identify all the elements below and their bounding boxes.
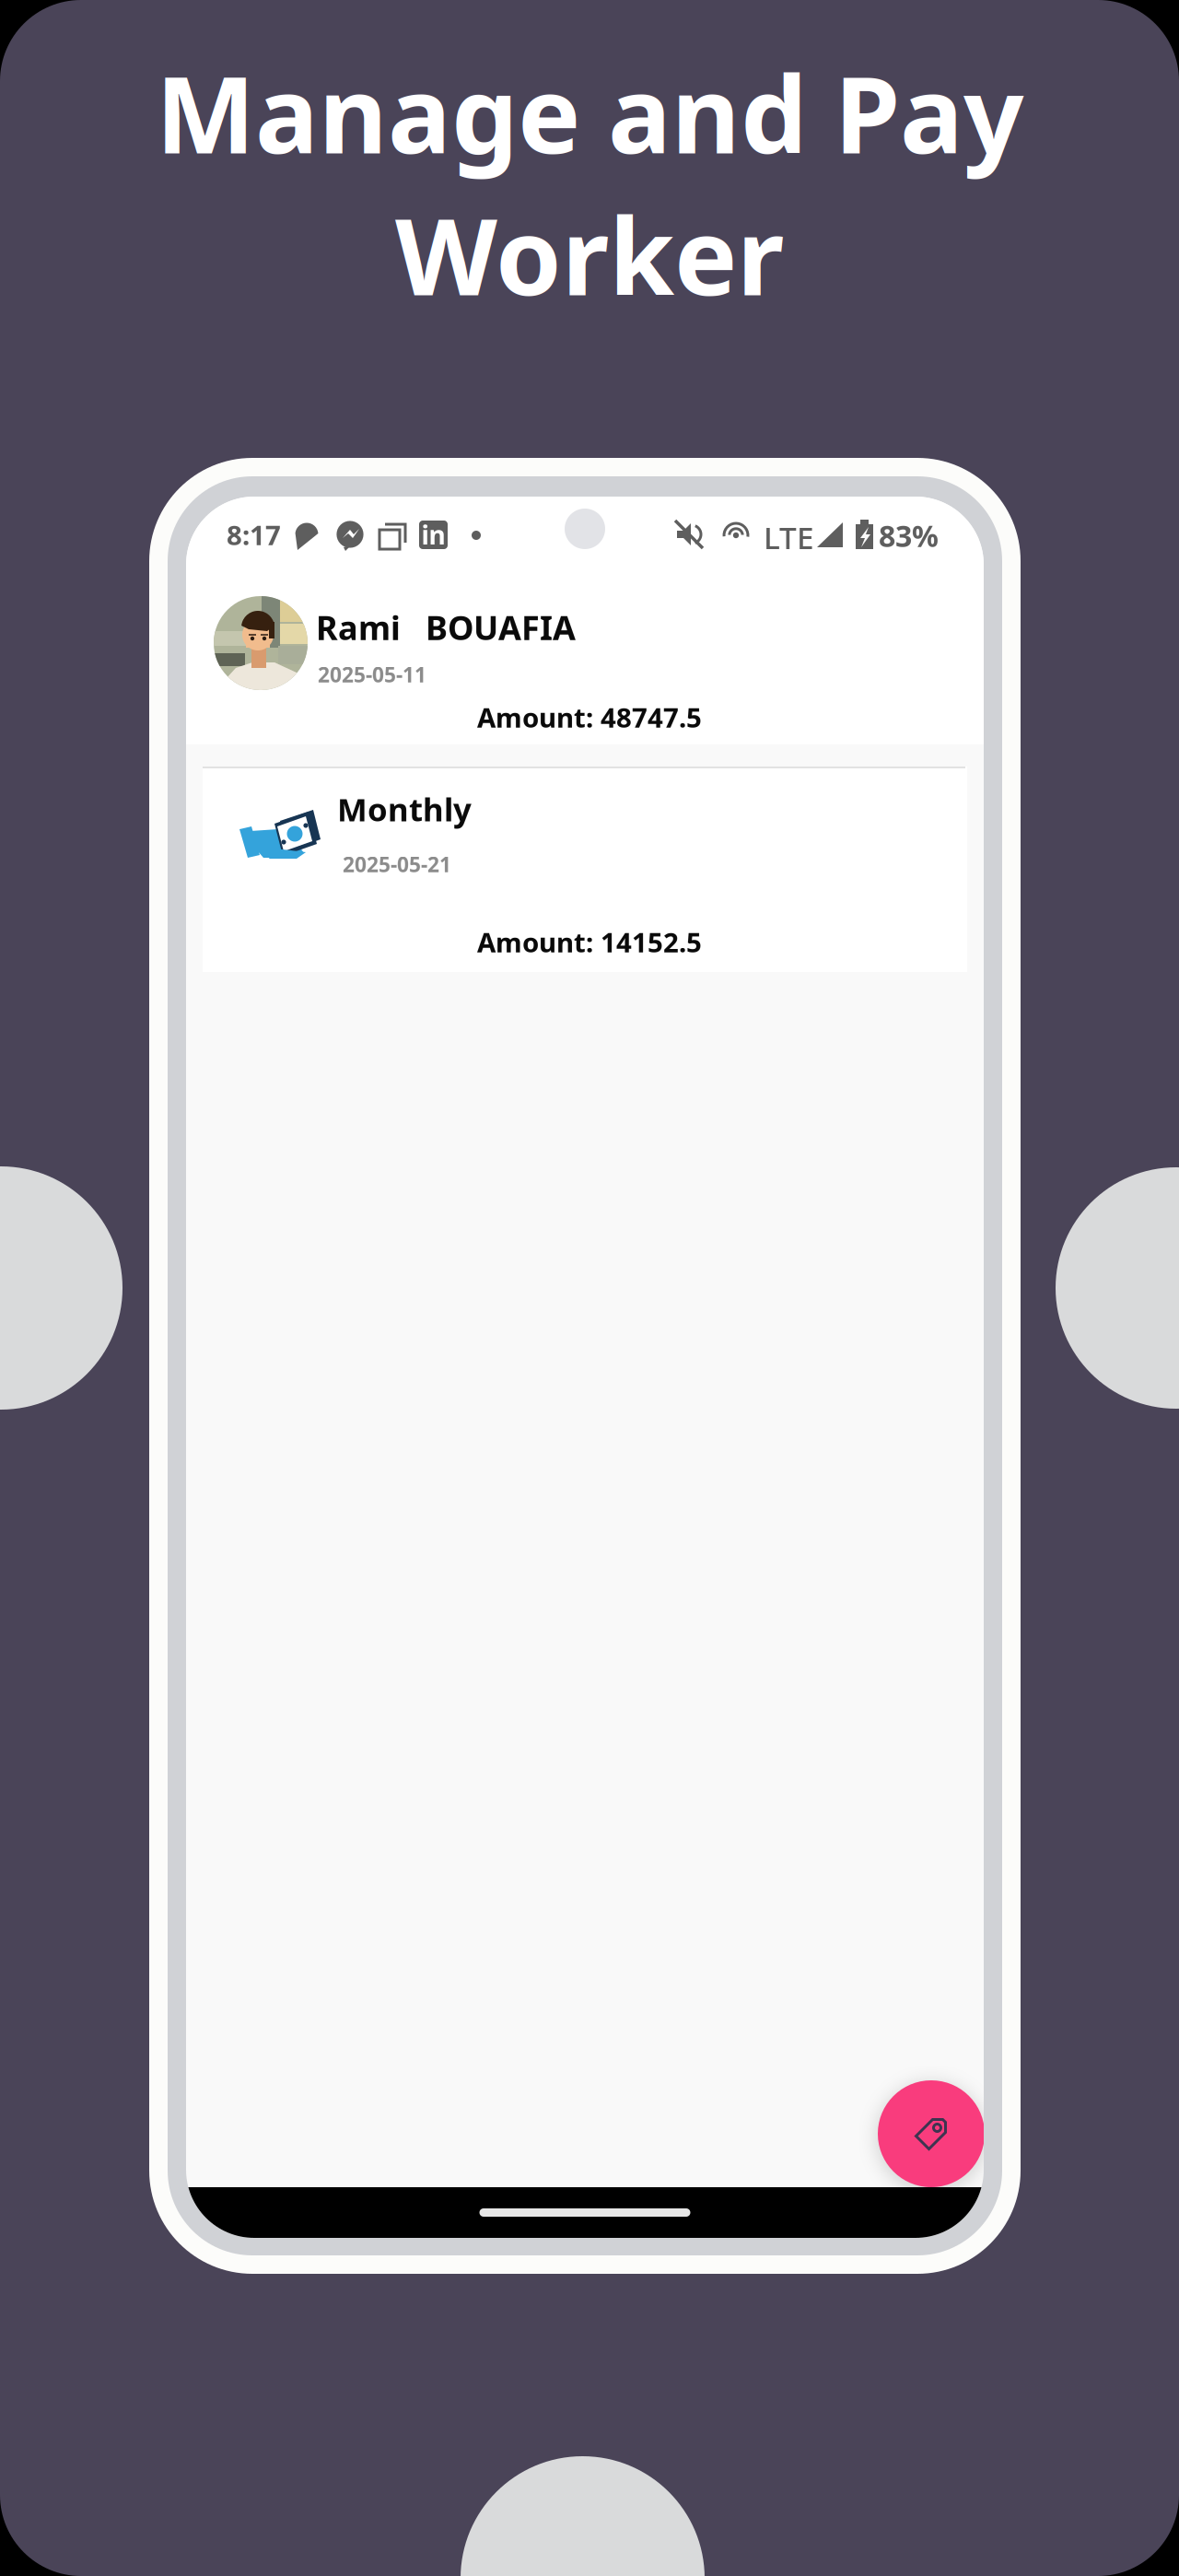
staticText: Amount: bbox=[477, 699, 593, 735]
staticText: Manage and Pay bbox=[156, 42, 1023, 183]
staticText: 83% bbox=[879, 516, 939, 555]
staticText: 14152.5 bbox=[601, 924, 702, 960]
button[interactable]: Monthly bbox=[203, 767, 967, 972]
staticText: Monthly bbox=[337, 788, 472, 830]
staticText: 8:17 bbox=[227, 517, 281, 553]
staticText: LTE bbox=[764, 517, 814, 558]
staticText: Rami BOUAFIA bbox=[316, 605, 576, 649]
button[interactable]: Add tag bbox=[878, 2080, 985, 2187]
button[interactable]: Rami BOUAFIA bbox=[186, 553, 984, 744]
staticText: in bbox=[421, 518, 445, 552]
staticText: Amount: bbox=[477, 924, 593, 960]
staticText: 2025-05-21 bbox=[343, 850, 451, 878]
staticText: 48747.5 bbox=[601, 699, 702, 735]
staticText: Worker bbox=[395, 184, 784, 324]
staticText: 2025-05-11 bbox=[318, 661, 426, 688]
